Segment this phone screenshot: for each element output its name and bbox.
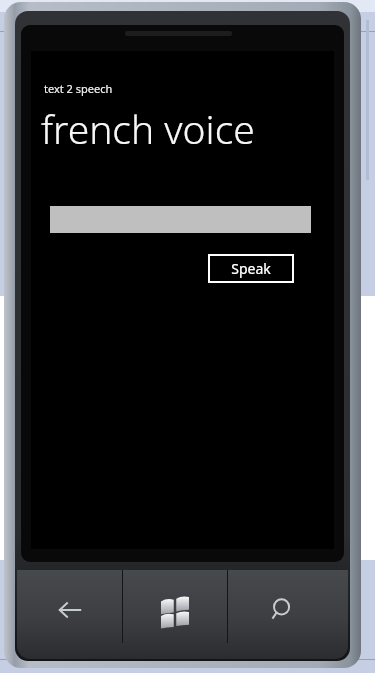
button[interactable]: Search <box>228 570 332 650</box>
button[interactable]: Back <box>17 570 122 650</box>
staticText: Speak <box>231 259 271 278</box>
button[interactable]: Speak <box>208 254 294 283</box>
staticText: french voice <box>41 102 255 155</box>
button[interactable]: Start <box>123 570 227 650</box>
staticText: text 2 speech <box>44 81 113 96</box>
